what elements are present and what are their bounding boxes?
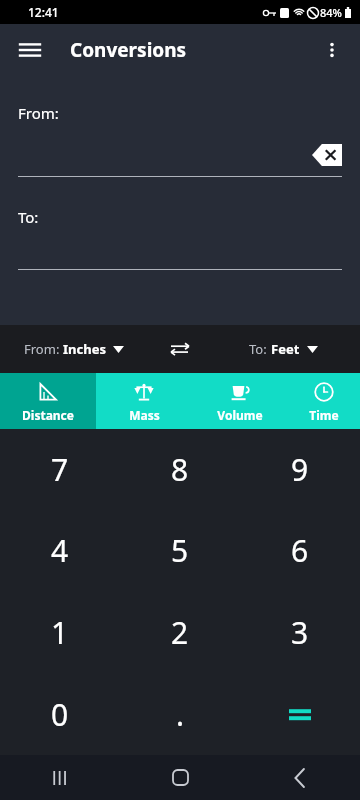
button[interactable]: 1 (0, 591, 120, 673)
button[interactable]: Back (240, 755, 360, 800)
button[interactable] (240, 673, 360, 755)
staticText: 6 (291, 530, 309, 571)
button[interactable]: 0 (0, 673, 120, 755)
button[interactable]: From: (24, 340, 124, 358)
button[interactable]: 8 (120, 429, 240, 510)
staticText: 12:41 (28, 4, 59, 20)
button[interactable]: Mass (96, 373, 192, 429)
staticText: 84% (320, 5, 342, 20)
staticText: From: (18, 103, 59, 123)
button[interactable]: Recent apps (0, 755, 120, 800)
button[interactable]: Home (120, 755, 240, 800)
staticText: 5 (171, 530, 189, 571)
staticText: Mass (129, 407, 160, 423)
button[interactable]: 2 (120, 591, 240, 673)
button[interactable]: 4 (0, 510, 120, 591)
staticText: Conversions (70, 37, 187, 63)
staticText: . (176, 694, 185, 735)
staticText: 9 (291, 449, 309, 490)
staticText: Time (309, 407, 339, 423)
staticText: 7 (51, 449, 69, 490)
button[interactable]: 6 (240, 510, 360, 591)
staticText: From: (24, 340, 63, 358)
button[interactable]: Distance (0, 373, 96, 429)
button[interactable]: 3 (240, 591, 360, 673)
button[interactable]: Volume (192, 373, 288, 429)
staticText: Inches (63, 340, 106, 358)
staticText: Distance (22, 407, 74, 423)
staticText: 4 (51, 530, 69, 571)
staticText: To: (249, 340, 271, 358)
button[interactable]: Time (288, 373, 360, 429)
staticText: Feet (271, 340, 300, 358)
button[interactable]: To: (249, 340, 318, 358)
button[interactable]: . (120, 673, 240, 755)
staticText: 8 (171, 449, 189, 490)
button[interactable]: Backspace (312, 144, 342, 166)
button[interactable]: Swap units (160, 329, 200, 369)
staticText: 1 (51, 612, 69, 653)
staticText: Volume (217, 407, 263, 423)
staticText: 2 (171, 612, 189, 653)
button[interactable]: 7 (0, 429, 120, 510)
button[interactable]: 5 (120, 510, 240, 591)
button[interactable]: 9 (240, 429, 360, 510)
button[interactable]: Open navigation menu (8, 28, 52, 72)
staticText: 0 (51, 694, 69, 735)
staticText: To: (18, 207, 39, 227)
staticText: 3 (291, 612, 309, 653)
button[interactable]: More options (310, 28, 354, 72)
